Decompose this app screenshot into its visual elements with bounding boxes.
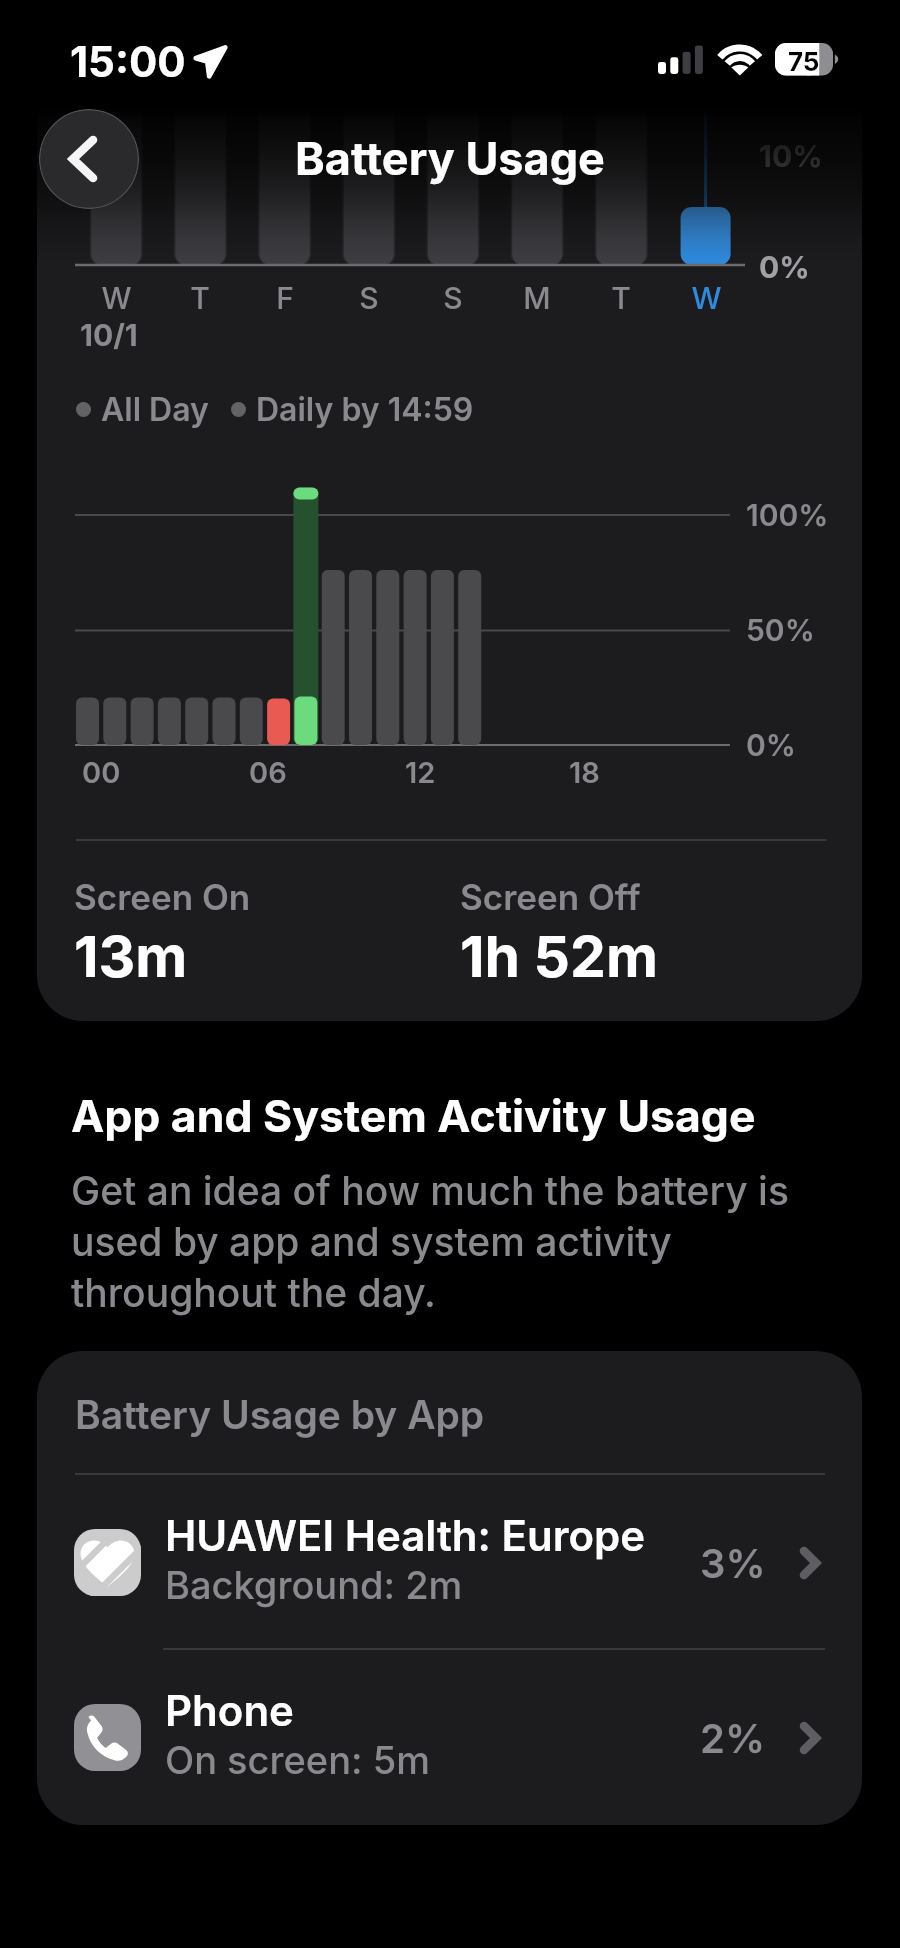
staticText: Background: 2m [165,1562,463,1608]
staticText: M [523,280,551,316]
staticText: T [611,280,631,316]
staticText: 10% [759,138,823,174]
button[interactable]: Phone [37,1650,862,1825]
staticText: Battery Usage by App [75,1391,485,1438]
staticText: 0% [746,727,796,763]
staticText: All Day [101,390,209,429]
staticText: 0% [759,249,810,285]
staticText: 3% [700,1539,766,1587]
staticText: Screen Off [460,876,641,918]
staticText: 1h 52m [460,922,658,991]
staticText: Phone [165,1685,294,1736]
staticText: Battery Usage [295,131,605,185]
staticText: 13m [74,922,188,991]
staticText: Screen On [74,876,251,918]
staticText: 75 [788,46,820,77]
button[interactable]: HUAWEI Health: Europe [37,1475,862,1650]
staticText: App and System Activity Usage [71,1089,756,1143]
staticText: 50% [746,612,815,648]
staticText: S [443,280,463,316]
staticText: 00 [82,755,121,790]
button[interactable]: Back [39,109,139,209]
staticText: S [359,280,379,316]
staticText: Daily by 14:59 [256,390,474,429]
staticText: W [101,280,132,316]
staticText: F [276,280,294,316]
staticText: T [190,280,210,316]
staticText: 100% [746,497,829,533]
staticText: Get an idea of how much the battery is u… [71,1167,801,1316]
staticText: 10/1 [80,317,138,353]
staticText: 18 [569,755,600,790]
staticText: 06 [249,755,287,790]
staticText: W [691,280,722,316]
staticText: HUAWEI Health: Europe [165,1510,646,1561]
staticText: 12 [405,755,436,790]
staticText: 2% [700,1714,766,1762]
staticText: 15:00 [70,36,186,87]
staticText: On screen: 5m [165,1737,430,1783]
